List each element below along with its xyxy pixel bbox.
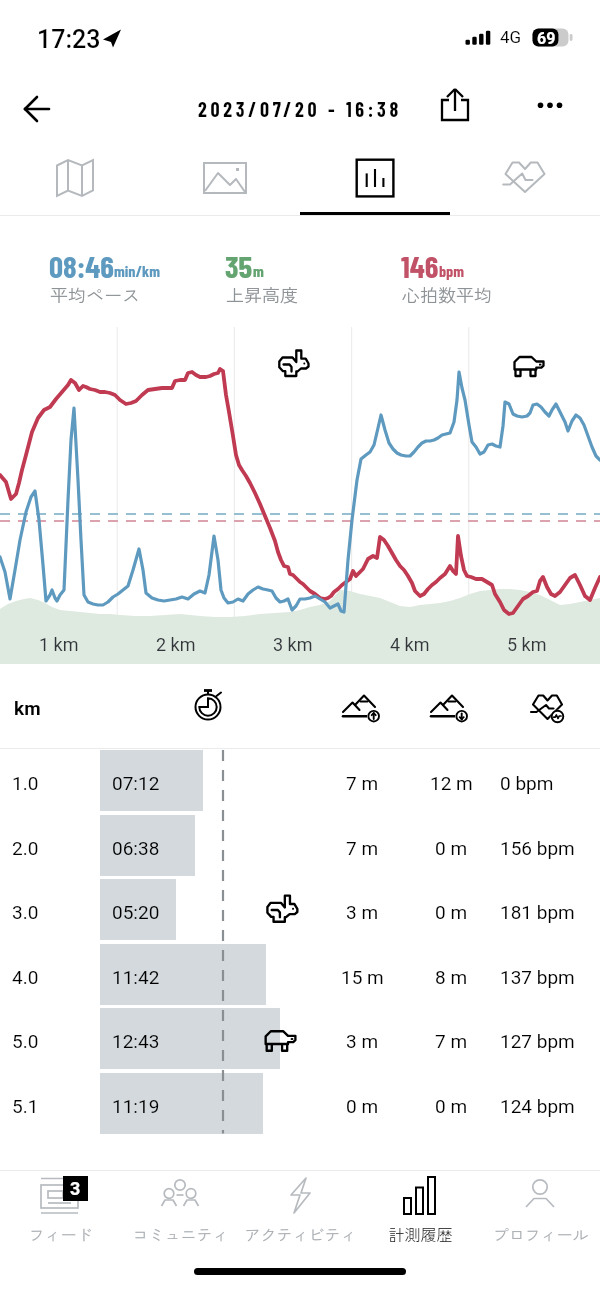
button[interactable]: Photos [150, 144, 300, 214]
staticText: 計測履歴 [388, 1222, 453, 1245]
staticText: 4.0 [12, 966, 39, 988]
staticText: 1.0 [12, 772, 39, 794]
staticText: 0 m [435, 1095, 468, 1117]
staticText: フィード [28, 1222, 93, 1245]
button[interactable]: 計測履歴 [360, 1171, 480, 1255]
staticText: 心拍数平均 [402, 281, 492, 307]
staticText: 3 m [346, 901, 379, 923]
staticText: コミュニティ [132, 1222, 229, 1245]
staticText: 4G [500, 27, 522, 47]
button[interactable]: 1.0 [0, 749, 600, 814]
staticText: 平均ペース [50, 281, 140, 307]
staticText: 12:43 [112, 1030, 160, 1052]
staticText: 127 bpm [500, 1030, 575, 1052]
staticText: 137 bpm [500, 966, 575, 988]
staticText: 3 m [346, 1030, 379, 1052]
button[interactable]: アクティビティ [240, 1171, 360, 1255]
staticText: 0 m [435, 837, 468, 859]
staticText: 5 km [507, 634, 547, 655]
button[interactable]: 5.1 [0, 1072, 600, 1137]
button[interactable]: プロフィール [480, 1171, 600, 1255]
staticText: 5.0 [12, 1030, 39, 1052]
staticText: min/km [114, 261, 161, 280]
staticText: 5.1 [12, 1095, 39, 1117]
staticText: 8 m [435, 966, 468, 988]
staticText: 05:20 [112, 901, 160, 923]
staticText: 06:38 [112, 837, 160, 859]
button[interactable]: Heart rate [450, 144, 600, 214]
button[interactable]: 4.0 [0, 943, 600, 1008]
button[interactable]: 3.0 [0, 878, 600, 943]
button[interactable]: Map [0, 144, 150, 214]
staticText: 1 km [39, 634, 79, 655]
staticText: 7 m [435, 1030, 468, 1052]
staticText: 2023/07/20 - 16:38 [198, 97, 402, 121]
staticText: 17:23 [37, 25, 101, 54]
staticText: 35 [225, 247, 253, 284]
staticText: 156 bpm [500, 837, 575, 859]
staticText: 181 bpm [500, 901, 575, 923]
staticText: 4 km [390, 634, 430, 655]
staticText: 3 km [273, 634, 313, 655]
staticText: 3 [70, 1178, 81, 1199]
staticText: 2.0 [12, 837, 39, 859]
button[interactable]: 5.0 [0, 1007, 600, 1072]
button[interactable]: More options [525, 82, 575, 132]
staticText: 0 m [346, 1095, 379, 1117]
staticText: 69 [537, 29, 556, 48]
staticText: bpm [439, 261, 465, 280]
staticText: アクティビティ [244, 1222, 357, 1245]
staticText: 7 m [346, 837, 379, 859]
staticText: プロフィール [492, 1222, 589, 1245]
staticText: 12 m [430, 772, 473, 794]
staticText: 11:42 [112, 966, 160, 988]
staticText: 2 km [156, 634, 196, 655]
staticText: 15 m [341, 966, 384, 988]
staticText: 11:19 [112, 1095, 160, 1117]
staticText: 0 bpm [500, 772, 554, 794]
button[interactable]: Share [430, 74, 480, 124]
button[interactable]: コミュニティ [120, 1171, 240, 1255]
staticText: 0 m [435, 901, 468, 923]
button[interactable]: Back [9, 81, 65, 137]
staticText: 146 [401, 247, 439, 284]
button[interactable]: Charts [300, 144, 450, 214]
staticText: 124 bpm [500, 1095, 575, 1117]
staticText: km [14, 697, 41, 719]
staticText: 08:46 [49, 247, 114, 284]
staticText: 上昇高度 [226, 281, 298, 307]
button[interactable]: 3 [0, 1171, 120, 1255]
button[interactable]: 2.0 [0, 814, 600, 879]
staticText: 7 m [346, 772, 379, 794]
staticText: m [253, 261, 264, 280]
staticText: 07:12 [112, 772, 160, 794]
staticText: 3.0 [12, 901, 39, 923]
